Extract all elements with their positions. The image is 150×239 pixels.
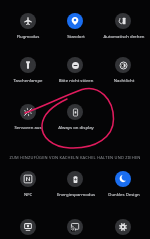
staticText: Nachtlicht (101, 77, 147, 83)
staticText: NFC (5, 191, 51, 197)
button[interactable]: Kachel (20, 219, 36, 235)
staticText: Always on display (53, 124, 99, 130)
button[interactable]: Automatisch drehen (115, 13, 131, 29)
button[interactable]: Kachel (67, 219, 83, 235)
staticText: Standort (53, 33, 99, 39)
staticText: Flugmodus (5, 33, 51, 39)
button[interactable]: Energiesparmodus (67, 171, 83, 187)
staticText: ZUM HINZUFÜGEN VON KACHELN KACHEL HALTEN… (0, 155, 150, 239)
button[interactable]: NFC (20, 171, 36, 187)
staticText: Bitte nicht stören (53, 77, 99, 83)
staticText: Taschenlampe (5, 77, 51, 83)
button[interactable]: Bitte nicht stören (67, 57, 83, 73)
button[interactable]: Taschenlampe (20, 57, 36, 73)
button[interactable]: Kachel (115, 219, 131, 235)
button[interactable]: Dunkles Design (115, 171, 131, 187)
button[interactable]: Nachtlicht (115, 57, 131, 73)
staticText: Energiesparmodus (53, 191, 99, 197)
staticText: Automatisch drehen (101, 33, 147, 39)
button[interactable]: Flugmodus (20, 13, 36, 29)
staticText: Dunkles Design (101, 191, 147, 197)
button[interactable]: Sensoren aus (20, 104, 36, 120)
button[interactable]: Standort (67, 13, 83, 29)
staticText: Sensoren aus (5, 124, 51, 130)
button[interactable]: Always on display (67, 104, 83, 120)
